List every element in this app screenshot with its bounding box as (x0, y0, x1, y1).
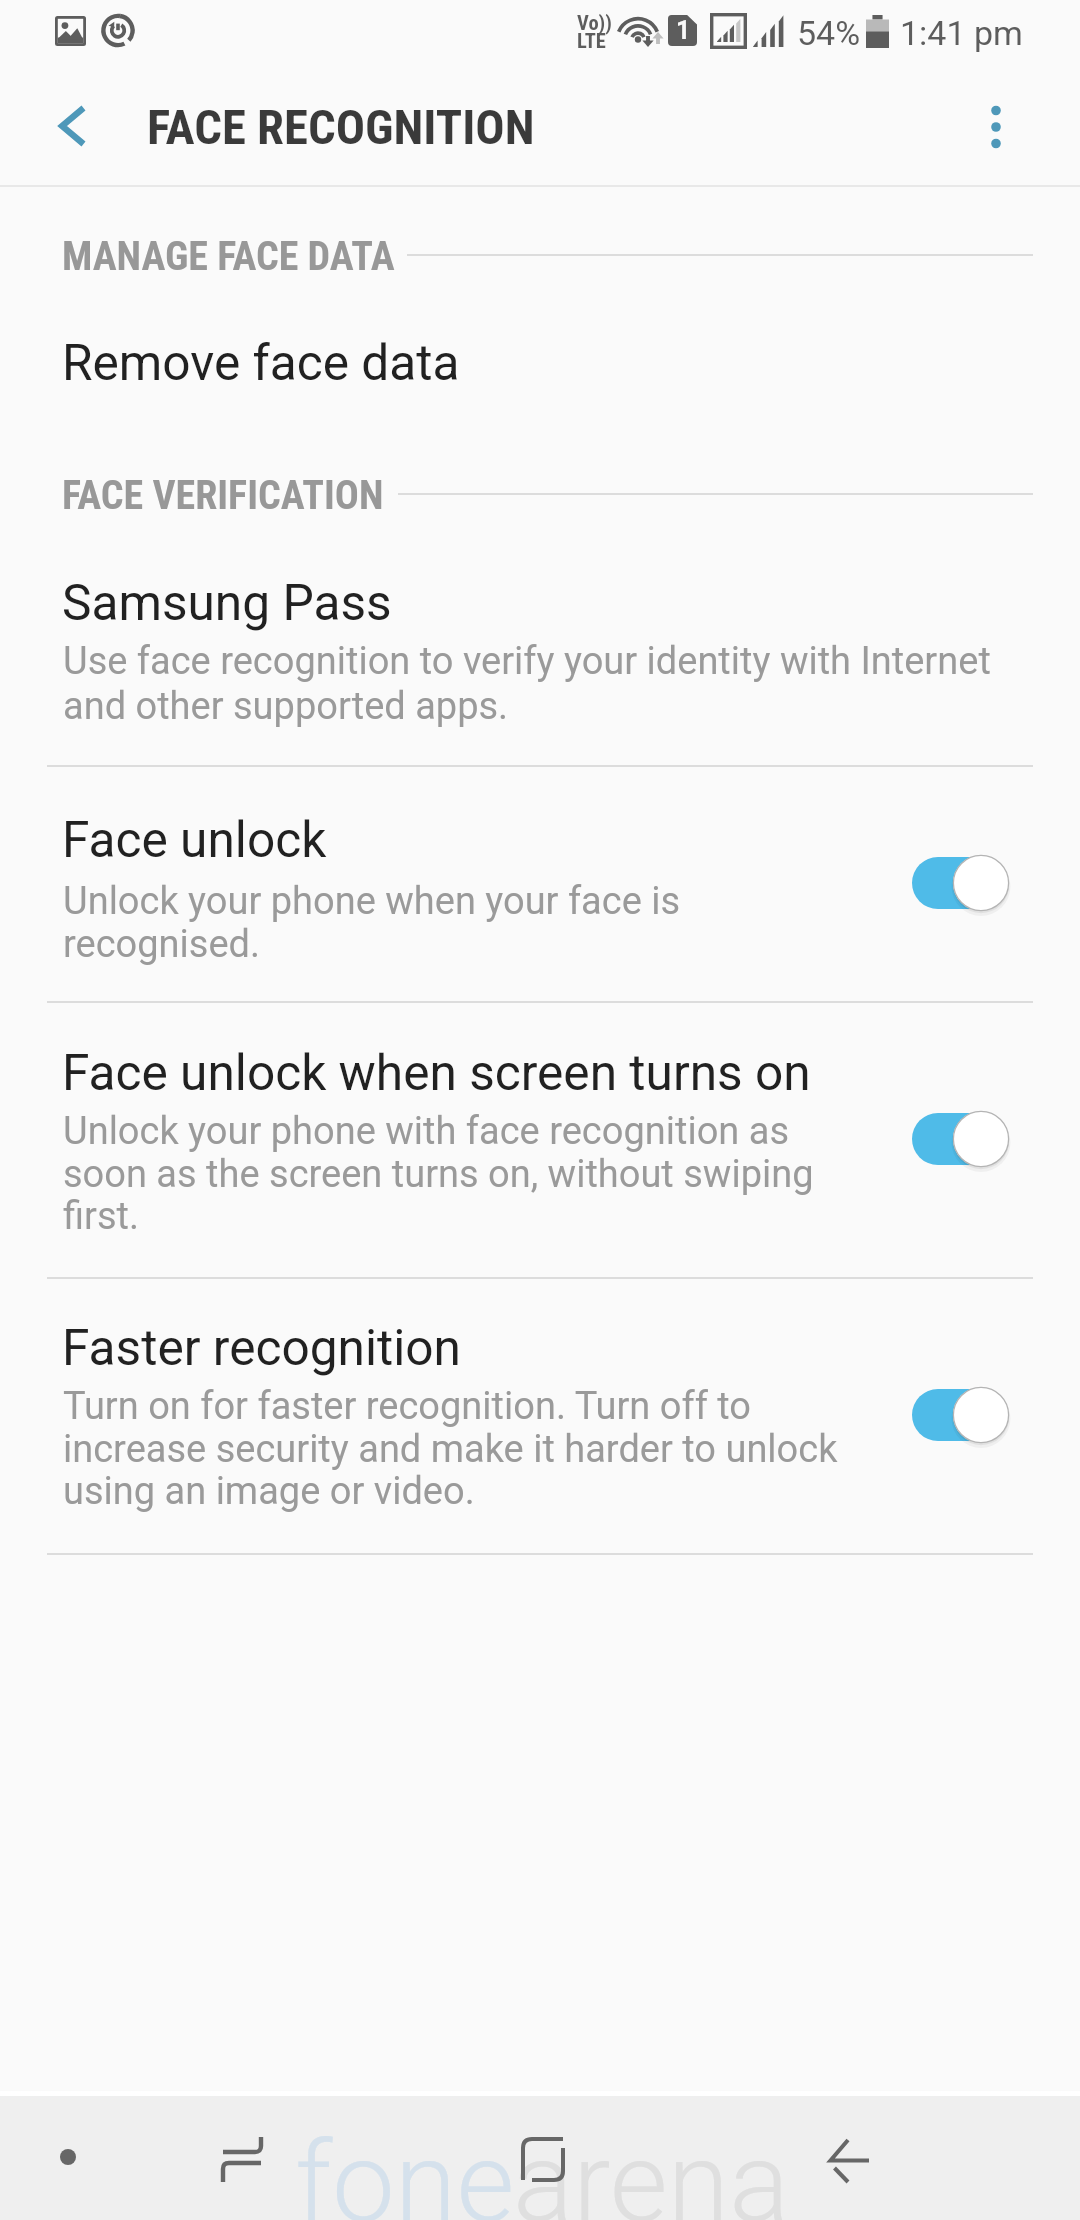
staticText: Face unlock (62, 811, 327, 869)
button[interactable]: Face unlock (0, 767, 1080, 999)
button[interactable]: More options (944, 80, 1048, 186)
button[interactable]: Remove face data (0, 300, 1080, 420)
staticText: FACE RECOGNITION (147, 99, 535, 156)
staticText: Face unlock when screen turns on (62, 1044, 811, 1102)
staticText: Remove face data (62, 334, 460, 392)
staticText: LTE (577, 29, 606, 53)
staticText: using an image or video. (63, 1469, 475, 1514)
staticText: Samsung Pass (62, 574, 392, 632)
button[interactable]: On (896, 1375, 1032, 1455)
staticText: 54% (797, 13, 861, 53)
staticText: increase security and make it harder to … (63, 1427, 838, 1472)
button[interactable]: Hide navigation bar (0, 2096, 146, 2220)
staticText: recognised. (63, 922, 261, 967)
staticText: Unlock your phone when your face is (63, 879, 681, 924)
button[interactable]: Home (440, 2096, 630, 2220)
button[interactable]: On (896, 843, 1032, 923)
staticText: 1 (676, 16, 691, 45)
button[interactable]: On (896, 1099, 1032, 1179)
staticText: FACE VERIFICATION (62, 472, 384, 519)
staticText: soon as the screen turns on, without swi… (63, 1152, 814, 1197)
button[interactable]: Samsung Pass (0, 540, 1080, 765)
staticText: arena (513, 2117, 790, 2220)
staticText: MANAGE FACE DATA (62, 233, 395, 280)
staticText: Turn on for faster recognition. Turn off… (63, 1384, 752, 1429)
staticText: and other supported apps. (63, 684, 509, 729)
staticText: 1:41 pm (900, 13, 1023, 53)
staticText: first. (63, 1194, 139, 1239)
button[interactable]: Recent apps (146, 2096, 336, 2220)
staticText: Use face recognition to verify your iden… (63, 639, 991, 684)
staticText: Faster recognition (62, 1319, 461, 1377)
button[interactable]: Back (750, 2096, 940, 2220)
staticText: Unlock your phone with face recognition … (63, 1109, 790, 1154)
staticText: fone (295, 2117, 515, 2220)
button[interactable]: Faster recognition (0, 1279, 1080, 1551)
button[interactable]: Navigate up (14, 80, 126, 186)
staticText: Vo)) (577, 11, 612, 35)
button[interactable]: Face unlock when screen turns on (0, 1003, 1080, 1275)
